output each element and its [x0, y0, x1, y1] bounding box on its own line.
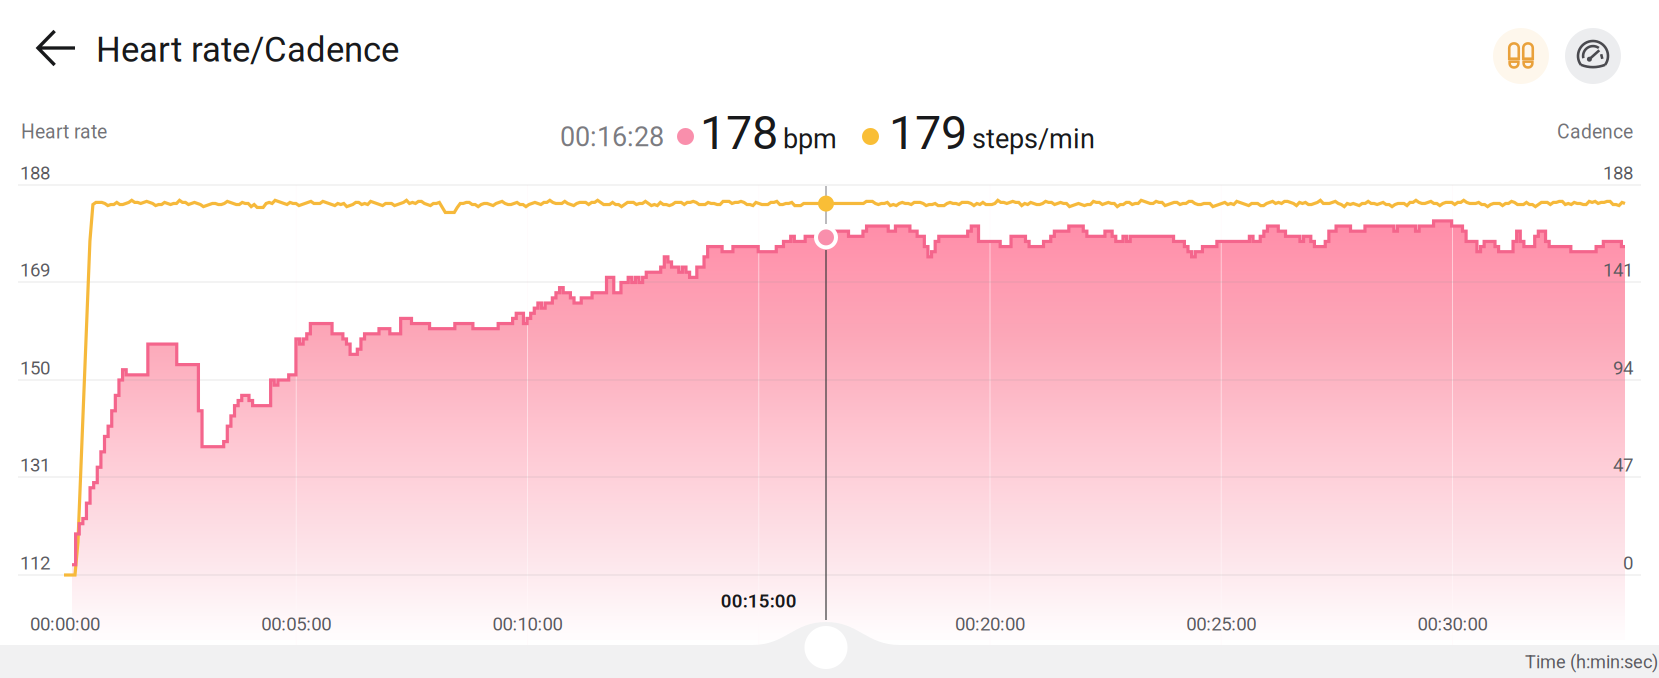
staticText: Heart rate	[21, 121, 107, 143]
button[interactable]: Cadence	[1493, 28, 1549, 84]
staticText: bpm	[783, 123, 837, 155]
button[interactable]: Speed	[1565, 28, 1621, 84]
staticText: 131	[20, 454, 50, 476]
staticText: Time (h:min:sec)	[1525, 651, 1658, 673]
staticText: 00:00:00	[30, 613, 100, 635]
staticText: 00:20:00	[955, 613, 1025, 635]
staticText: Heart rate/Cadence	[96, 30, 399, 70]
staticText: 47	[1613, 454, 1633, 476]
staticText: 00:25:00	[1186, 613, 1256, 635]
staticText: 188	[1603, 162, 1633, 184]
staticText: 178	[700, 106, 778, 160]
button[interactable]: Back	[22, 15, 91, 81]
staticText: 112	[20, 552, 50, 574]
staticText: 0	[1623, 552, 1633, 574]
staticText: Cadence	[1557, 121, 1633, 143]
staticText: 00:15:00	[721, 590, 797, 612]
staticText: 179	[889, 106, 967, 160]
staticText: 00:10:00	[492, 613, 562, 635]
staticText: 00:05:00	[261, 613, 331, 635]
staticText: 150	[20, 357, 50, 379]
staticText: 169	[20, 259, 50, 281]
staticText: 188	[20, 162, 50, 184]
staticText: steps/min	[972, 123, 1095, 155]
staticText: 00:16:28	[560, 121, 664, 153]
staticText: 141	[1603, 259, 1633, 281]
staticText: 00:30:00	[1417, 613, 1487, 635]
staticText: 94	[1613, 357, 1633, 379]
